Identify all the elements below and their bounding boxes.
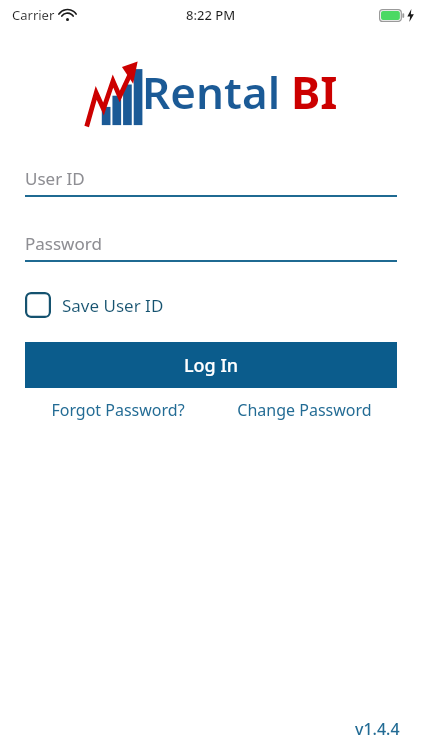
- staticText: Carrier: [12, 6, 55, 24]
- staticText: Rental: [142, 62, 281, 122]
- button[interactable]: User ID: [25, 164, 397, 197]
- button[interactable]: Password: [25, 229, 397, 262]
- staticText: v1.4.4: [355, 718, 400, 740]
- staticText: Save User ID: [62, 294, 164, 317]
- button[interactable]: Save User ID: [25, 288, 164, 322]
- button[interactable]: Forgot Password?: [25, 399, 211, 421]
- staticText: User ID: [25, 167, 85, 190]
- button[interactable]: Log In: [25, 342, 397, 388]
- staticText: 8:22 PM: [186, 6, 236, 24]
- staticText: Password: [25, 232, 102, 255]
- staticText: BI: [291, 62, 338, 122]
- staticText: Log In: [184, 353, 239, 378]
- button[interactable]: Change Password: [211, 399, 397, 421]
- staticText: Change Password: [237, 399, 372, 421]
- staticText: Forgot Password?: [51, 399, 185, 421]
